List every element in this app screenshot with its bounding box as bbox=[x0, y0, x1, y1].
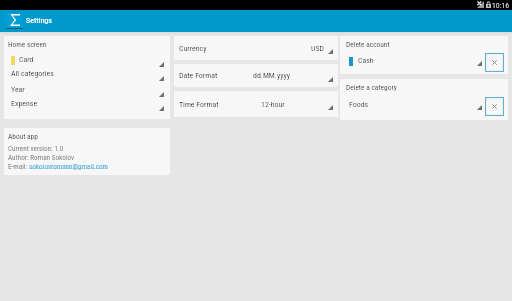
staticText: Delete a category bbox=[346, 83, 397, 92]
staticText: Current version: 1.0 bbox=[8, 144, 64, 152]
staticText: Delete account bbox=[346, 40, 390, 49]
staticText: sokolovromann@gmail.com bbox=[29, 162, 109, 170]
staticText: Time Format bbox=[179, 100, 219, 109]
button[interactable]: Delete bbox=[485, 97, 504, 116]
staticText: Expense bbox=[11, 99, 38, 108]
staticText: Date Format bbox=[179, 71, 218, 80]
staticText: 12-hour bbox=[261, 100, 285, 109]
button[interactable]: Year bbox=[4, 82, 170, 97]
staticText: Card bbox=[19, 55, 34, 64]
staticText: About app bbox=[8, 132, 38, 141]
staticText: USD bbox=[311, 44, 325, 53]
button[interactable]: Card bbox=[4, 52, 170, 67]
staticText: Year bbox=[11, 85, 25, 94]
button[interactable]: Foods bbox=[340, 95, 483, 114]
staticText: Foods bbox=[349, 100, 369, 109]
button[interactable]: Time Format bbox=[174, 91, 338, 117]
button[interactable]: Delete bbox=[485, 53, 504, 72]
button[interactable]: All categories bbox=[4, 66, 170, 81]
staticText: Currency bbox=[179, 44, 207, 53]
staticText: Author: Roman Sokolov bbox=[8, 153, 75, 161]
staticText: Cash bbox=[358, 56, 374, 65]
staticText: dd.MM.yyyy bbox=[253, 71, 291, 80]
button[interactable]: Expense bbox=[4, 96, 170, 111]
button[interactable]: Date Format bbox=[174, 64, 338, 87]
staticText: 10:16 bbox=[492, 1, 510, 10]
staticText: E-mail: bbox=[8, 162, 29, 170]
button[interactable]: Cash bbox=[340, 51, 483, 70]
button[interactable]: Currency bbox=[174, 36, 338, 60]
staticText: Settings bbox=[26, 16, 52, 25]
staticText: All categories bbox=[11, 69, 54, 78]
staticText: Home screen bbox=[8, 40, 47, 49]
